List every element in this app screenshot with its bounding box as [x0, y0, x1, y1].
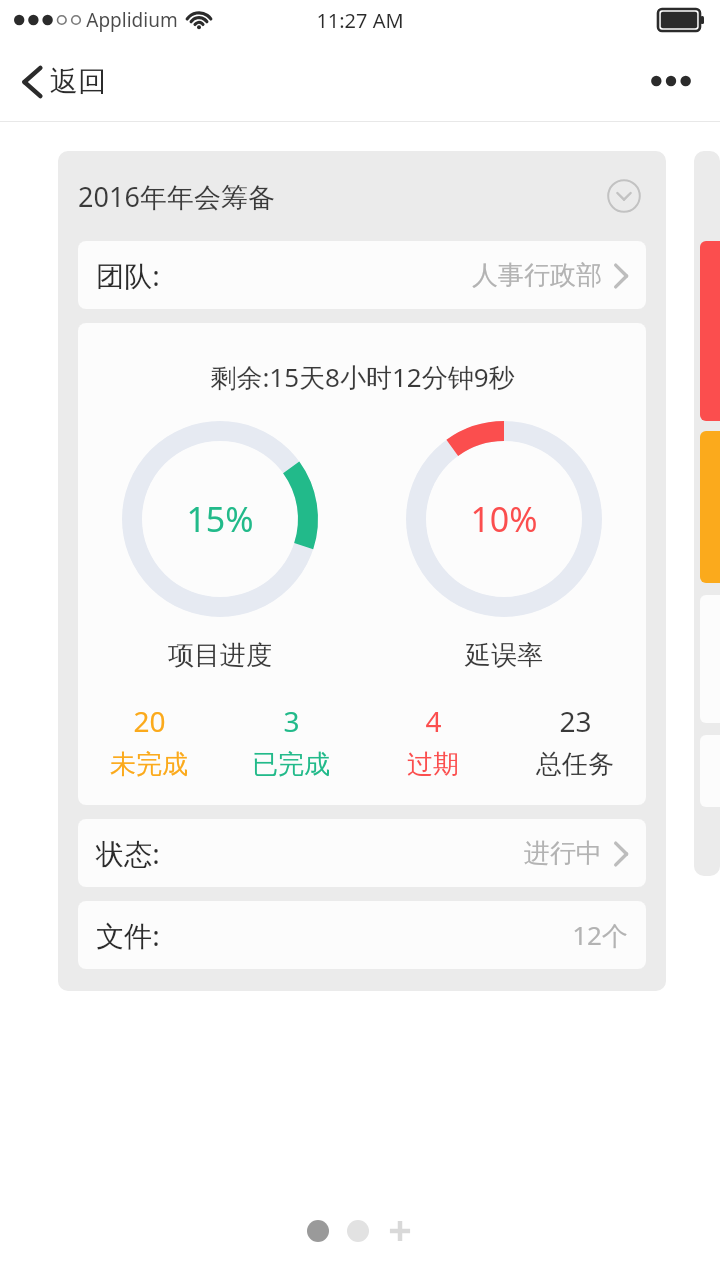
staticText: 剩余:15天8小时12分钟9秒 — [210, 359, 515, 395]
button[interactable]: 剩余:15天8小时12分钟9秒 — [78, 323, 646, 805]
button[interactable]: 返回 — [12, 58, 120, 105]
button[interactable]: 团队: — [78, 241, 646, 309]
staticText: 延误率 — [465, 639, 543, 672]
button[interactable]: 20 — [78, 702, 220, 781]
button[interactable]: More options — [646, 56, 696, 106]
button[interactable]: 3 — [220, 702, 362, 781]
staticText: 项目进度 — [168, 639, 272, 672]
staticText: Applidium — [86, 7, 178, 33]
staticText: 10% — [470, 496, 538, 542]
button[interactable]: Page 2 — [347, 1220, 369, 1242]
staticText: 团队: — [96, 256, 160, 294]
staticText: 总任务 — [536, 748, 614, 781]
button[interactable] — [694, 151, 720, 876]
staticText: 返回 — [50, 64, 106, 99]
staticText: 状态: — [96, 834, 160, 872]
staticText: 3 — [283, 702, 300, 740]
staticText: 2016年年会筹备 — [78, 178, 275, 215]
staticText: 23 — [559, 702, 592, 740]
staticText: 未完成 — [110, 748, 188, 781]
staticText: 15% — [186, 496, 254, 542]
button[interactable]: 4 — [362, 702, 504, 781]
staticText: 过期 — [407, 748, 459, 781]
staticText: 20 — [133, 702, 166, 740]
staticText: 进行中 — [524, 837, 602, 870]
staticText: 已完成 — [252, 748, 330, 781]
staticText: 文件: — [96, 916, 160, 954]
button[interactable]: 文件: — [78, 901, 646, 969]
button[interactable]: 状态: — [78, 819, 646, 887]
button[interactable]: 10% — [362, 421, 646, 672]
staticText: 人事行政部 — [472, 259, 602, 292]
button[interactable]: 15% — [78, 421, 362, 672]
staticText: 4 — [425, 702, 442, 740]
button[interactable]: Add page — [387, 1218, 413, 1244]
staticText: 12个 — [572, 917, 628, 953]
button[interactable]: Page 1 — [307, 1220, 329, 1242]
button[interactable]: Collapse — [602, 174, 646, 218]
button[interactable]: 23 — [504, 702, 646, 781]
staticText: 11:27 AM — [316, 7, 404, 34]
